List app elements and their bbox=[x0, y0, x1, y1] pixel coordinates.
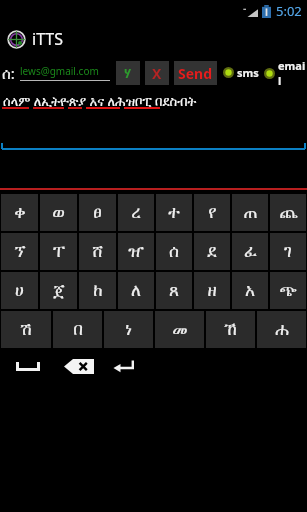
staticText: ወ bbox=[52, 204, 65, 221]
button[interactable]: ጭ bbox=[270, 272, 306, 309]
button[interactable]: ዘ bbox=[194, 272, 230, 309]
staticText: ሽ bbox=[20, 321, 32, 338]
staticText: ገ bbox=[284, 243, 292, 260]
button[interactable]: ጨ bbox=[270, 194, 306, 231]
staticText: ጀ bbox=[53, 282, 65, 299]
staticText: ሰ: bbox=[2, 63, 15, 83]
staticText: አ bbox=[245, 282, 255, 299]
button[interactable]: ረ bbox=[118, 194, 154, 231]
staticText: lews@gmail.com bbox=[20, 64, 99, 78]
button[interactable]: ሽ bbox=[1, 311, 51, 348]
button[interactable]: ለ bbox=[118, 272, 154, 309]
button[interactable]: ሰ bbox=[156, 233, 192, 270]
button[interactable]: ነ bbox=[104, 311, 153, 348]
staticText: ኸ bbox=[224, 321, 237, 338]
staticText: ሀ bbox=[15, 282, 24, 299]
staticText: ለ bbox=[131, 282, 141, 299]
staticText: sms bbox=[237, 65, 259, 80]
button[interactable]: ፈ bbox=[232, 233, 268, 270]
button[interactable]: የ bbox=[194, 194, 230, 231]
staticText: ዠ bbox=[128, 243, 144, 260]
button[interactable]: ቀ bbox=[1, 194, 38, 231]
button[interactable]: ፀ bbox=[79, 194, 116, 231]
button[interactable]: Send bbox=[174, 61, 217, 85]
button[interactable]: ተ bbox=[156, 194, 192, 231]
staticText: ፐ bbox=[53, 243, 65, 260]
staticText: በ bbox=[73, 321, 83, 338]
staticText: መ bbox=[172, 321, 188, 338]
button[interactable]: ጀ bbox=[40, 272, 77, 309]
button[interactable]: ሃ bbox=[116, 61, 140, 85]
button[interactable]: ሀ bbox=[1, 272, 38, 309]
staticText: iTTS bbox=[32, 28, 64, 50]
button[interactable]: ከ bbox=[79, 272, 116, 309]
staticText: ሃ bbox=[124, 64, 132, 82]
staticText: ኘ bbox=[14, 243, 26, 260]
button[interactable]: ሐ bbox=[257, 311, 306, 348]
staticText: ሰላም ለኢትዮጵያ እና ለሕዝቦፒ በደስብት bbox=[3, 92, 197, 110]
button[interactable]: መ bbox=[155, 311, 204, 348]
button[interactable]: ኘ bbox=[1, 233, 38, 270]
button[interactable]: ደ bbox=[194, 233, 230, 270]
staticText: X bbox=[152, 64, 162, 83]
staticText: ጸ bbox=[169, 282, 179, 299]
button[interactable]: አ bbox=[232, 272, 268, 309]
button[interactable]: ገ bbox=[270, 233, 306, 270]
staticText: ጨ bbox=[279, 204, 298, 221]
staticText: ከ bbox=[93, 282, 103, 299]
staticText: Send bbox=[178, 64, 213, 83]
button[interactable]: Space bbox=[12, 355, 44, 377]
button[interactable]: ፐ bbox=[40, 233, 77, 270]
button[interactable]: email bbox=[264, 58, 307, 88]
staticText: ረ bbox=[131, 204, 141, 221]
button[interactable]: sms bbox=[223, 65, 259, 80]
button[interactable]: ወ bbox=[40, 194, 77, 231]
staticText: የ bbox=[208, 204, 217, 221]
button[interactable]: ሸ bbox=[79, 233, 116, 270]
staticText: 5:02 bbox=[276, 2, 302, 20]
staticText: ሸ bbox=[92, 243, 103, 260]
button[interactable]: ጸ bbox=[156, 272, 192, 309]
staticText: ተ bbox=[168, 204, 180, 221]
staticText: email bbox=[278, 58, 307, 88]
button[interactable]: X bbox=[145, 61, 169, 85]
staticText: ሰ bbox=[169, 243, 179, 260]
button[interactable]: ዠ bbox=[118, 233, 154, 270]
staticText: ደ bbox=[207, 243, 217, 260]
button[interactable]: ኸ bbox=[206, 311, 255, 348]
staticText: ጠ bbox=[243, 204, 258, 221]
button[interactable]: Enter bbox=[109, 355, 139, 377]
staticText: ጭ bbox=[279, 282, 297, 299]
staticText: ሐ bbox=[275, 321, 289, 338]
staticText: ዘ bbox=[207, 282, 217, 299]
button[interactable]: በ bbox=[53, 311, 102, 348]
staticText: ፈ bbox=[244, 243, 257, 260]
button[interactable]: ጠ bbox=[232, 194, 268, 231]
staticText: ነ bbox=[125, 321, 132, 338]
button[interactable]: lews@gmail.com bbox=[20, 64, 110, 81]
button[interactable]: Backspace bbox=[62, 355, 96, 377]
staticText: ቀ bbox=[14, 204, 26, 221]
staticText: ፀ bbox=[93, 204, 102, 221]
